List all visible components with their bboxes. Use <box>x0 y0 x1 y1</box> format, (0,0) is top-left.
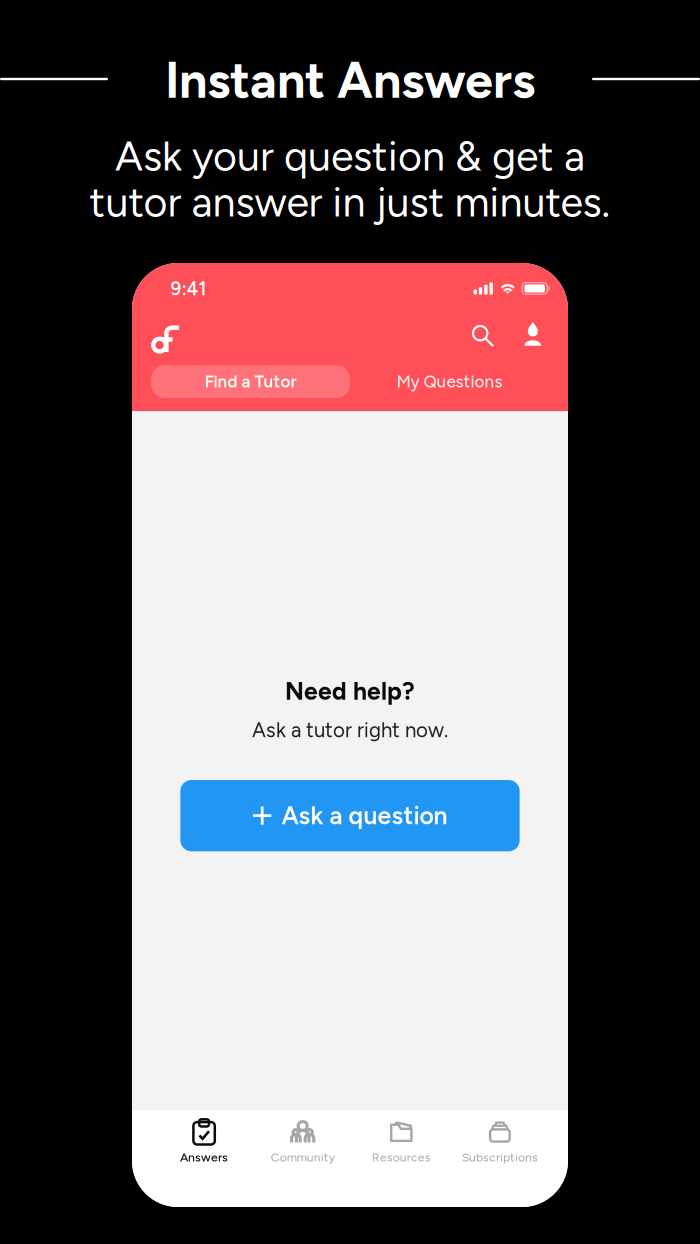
button[interactable]: Search <box>468 321 498 351</box>
staticText: Instant Answers <box>165 50 535 110</box>
staticText: Find a Tutor <box>204 371 296 392</box>
staticText: Subscriptions <box>462 1150 538 1164</box>
button[interactable]: My Questions <box>350 365 549 398</box>
button[interactable]: Subscriptions <box>451 1118 549 1168</box>
staticText: Ask your question & get a <box>115 131 585 181</box>
staticText: Resources <box>372 1150 431 1164</box>
button[interactable]: Home <box>148 323 182 357</box>
staticText: My Questions <box>396 371 502 392</box>
button[interactable]: Resources <box>352 1118 451 1168</box>
staticText: 9:41 <box>171 277 207 300</box>
staticText: Answers <box>180 1150 228 1164</box>
button[interactable]: Find a Tutor <box>151 365 350 398</box>
staticText: Need help? <box>285 676 415 706</box>
button[interactable]: Answers <box>155 1118 253 1168</box>
staticText: Community <box>271 1150 335 1164</box>
button[interactable]: Ask a question <box>180 780 520 851</box>
staticText: tutor answer in just minutes. <box>89 177 610 227</box>
button[interactable]: Community <box>253 1118 352 1168</box>
staticText: Ask a tutor right now. <box>252 718 448 742</box>
staticText: Ask a question <box>282 801 448 831</box>
button[interactable]: Profile <box>518 320 548 350</box>
